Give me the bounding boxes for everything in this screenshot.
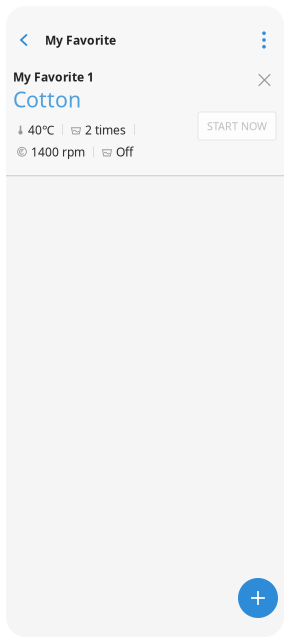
staticText: START NOW xyxy=(207,119,267,133)
button[interactable]: More options xyxy=(244,7,284,68)
staticText: 1400 rpm xyxy=(31,144,85,160)
staticText: Cotton xyxy=(13,85,81,113)
staticText: 40℃ xyxy=(28,122,54,138)
staticText: My Favorite xyxy=(45,32,116,48)
staticText: 2 times xyxy=(85,122,126,138)
button[interactable]: Remove favorite xyxy=(253,69,276,91)
button[interactable]: START NOW xyxy=(198,112,276,140)
button[interactable]: Add favorite xyxy=(238,578,278,618)
staticText: Off xyxy=(116,144,133,160)
staticText: My Favorite 1 xyxy=(13,69,94,85)
button[interactable]: Back xyxy=(6,7,42,68)
